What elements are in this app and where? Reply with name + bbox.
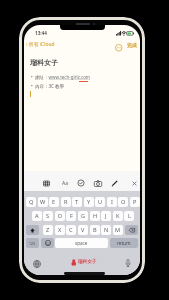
button[interactable]: K bbox=[113, 211, 123, 221]
staticText: M bbox=[115, 226, 121, 234]
staticText: return bbox=[117, 240, 131, 246]
button[interactable]: B bbox=[90, 225, 100, 235]
button[interactable] bbox=[125, 259, 131, 268]
staticText: H bbox=[93, 212, 98, 220]
button[interactable]: return bbox=[110, 238, 138, 248]
button[interactable]: V bbox=[78, 225, 88, 235]
staticText: S bbox=[46, 212, 50, 220]
button[interactable] bbox=[125, 225, 138, 235]
button[interactable]: H bbox=[90, 211, 100, 221]
staticText: ‹ 所有 iCloud bbox=[26, 41, 55, 48]
staticText: W bbox=[40, 198, 46, 206]
staticText: N bbox=[104, 226, 109, 234]
staticText: C bbox=[69, 226, 73, 234]
button[interactable] bbox=[132, 181, 137, 186]
button[interactable]: X bbox=[55, 225, 65, 235]
staticText: Q bbox=[29, 198, 34, 206]
button[interactable] bbox=[26, 225, 39, 235]
button[interactable] bbox=[41, 238, 54, 248]
staticText: D bbox=[58, 212, 63, 220]
button[interactable]: ‹ 所有 iCloud bbox=[26, 41, 55, 48]
button[interactable]: A bbox=[32, 211, 42, 221]
button[interactable]: N bbox=[101, 225, 111, 235]
button[interactable] bbox=[115, 44, 123, 52]
staticText: space bbox=[75, 240, 88, 246]
staticText: 完成 bbox=[127, 42, 137, 48]
button[interactable] bbox=[33, 260, 41, 268]
staticText: R bbox=[64, 198, 68, 206]
button[interactable]: F bbox=[66, 211, 76, 221]
staticText: K bbox=[116, 212, 120, 220]
staticText: Z bbox=[46, 226, 50, 234]
button[interactable]: U bbox=[95, 197, 105, 207]
staticText: A bbox=[35, 212, 39, 220]
staticText: 123 bbox=[29, 241, 36, 246]
button[interactable]: Z bbox=[43, 225, 53, 235]
button[interactable]: space bbox=[55, 238, 108, 248]
staticText: T bbox=[75, 198, 79, 206]
staticText: G bbox=[81, 212, 86, 220]
button[interactable]: C bbox=[66, 225, 76, 235]
staticText: • 內容：3C 教學 bbox=[31, 83, 65, 89]
staticText: F bbox=[70, 212, 73, 220]
button[interactable]: S bbox=[43, 211, 53, 221]
button[interactable]: Y bbox=[84, 197, 94, 207]
staticText: 瑠科女子 bbox=[78, 259, 97, 265]
staticText: U bbox=[98, 198, 103, 206]
button[interactable]: 完成 bbox=[127, 42, 137, 48]
button[interactable]: W bbox=[38, 197, 48, 207]
staticText: 13:44 bbox=[35, 30, 47, 36]
staticText: I bbox=[111, 198, 113, 206]
staticText: J bbox=[105, 212, 107, 220]
button[interactable]: D bbox=[55, 211, 65, 221]
staticText: 瑠科女子 bbox=[30, 58, 58, 67]
button[interactable]: J bbox=[101, 211, 111, 221]
staticText: B bbox=[93, 226, 97, 234]
button[interactable]: M bbox=[113, 225, 123, 235]
staticText: P bbox=[133, 198, 137, 206]
button[interactable]: E bbox=[49, 197, 59, 207]
staticText: O bbox=[121, 198, 126, 206]
staticText: Aa bbox=[62, 180, 69, 187]
staticText: • 網址：www.tech-girlz.com bbox=[31, 74, 91, 80]
staticText: E bbox=[52, 198, 56, 206]
button[interactable]: L bbox=[124, 211, 134, 221]
staticText: L bbox=[128, 212, 131, 220]
button[interactable]: P bbox=[130, 197, 140, 207]
button[interactable]: G bbox=[78, 211, 88, 221]
button[interactable]: 123 bbox=[26, 238, 39, 248]
button[interactable]: T bbox=[72, 197, 82, 207]
staticText: X bbox=[58, 226, 62, 234]
button[interactable]: I bbox=[107, 197, 117, 207]
button[interactable]: R bbox=[61, 197, 71, 207]
button[interactable]: O bbox=[118, 197, 128, 207]
staticText: Y bbox=[87, 198, 91, 206]
staticText: V bbox=[81, 226, 85, 234]
button[interactable]: Q bbox=[26, 197, 36, 207]
